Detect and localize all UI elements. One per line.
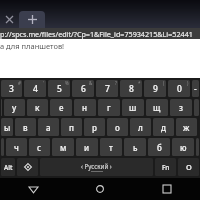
button[interactable]: о: [107, 118, 128, 136]
staticText: в: [23, 122, 28, 133]
staticText: %: [65, 80, 69, 86]
staticText: д: [161, 122, 166, 133]
button[interactable]: O: [178, 158, 199, 176]
staticText: а: [46, 122, 51, 133]
staticText: ю: [180, 142, 187, 153]
button[interactable]: ш: [122, 99, 144, 116]
staticText: г: [107, 102, 111, 113]
staticText: т: [109, 142, 113, 153]
button[interactable]: и: [76, 138, 98, 156]
button[interactable]: [196, 138, 199, 156]
button[interactable]: 8: [120, 80, 142, 97]
staticText: о: [115, 122, 120, 133]
staticText: -: [194, 83, 197, 95]
staticText: р: [92, 122, 97, 133]
button[interactable]: 6: [72, 80, 94, 97]
button[interactable]: p://spcs.me/files/edit/?Cp=1&File_id=759…: [0, 28, 200, 39]
staticText: (: [163, 80, 165, 86]
staticText: а для планшетов!: [0, 41, 65, 51]
staticText: 4: [33, 83, 38, 95]
button[interactable]: ‹ Русский ›: [40, 158, 153, 176]
button[interactable]: Home: [66, 178, 133, 200]
button[interactable]: 3: [1, 80, 22, 97]
staticText: ж: [183, 122, 190, 133]
staticText: *: [138, 80, 141, 86]
button[interactable]: Voice input: [17, 158, 38, 176]
staticText: у: [12, 102, 17, 113]
button[interactable]: в: [15, 118, 36, 136]
button[interactable]: ь: [124, 138, 146, 156]
button[interactable]: л: [130, 118, 151, 136]
button[interactable]: к: [27, 99, 48, 116]
button[interactable]: т: [100, 138, 122, 156]
button[interactable]: 5: [48, 80, 70, 97]
staticText: 3: [9, 83, 14, 95]
button[interactable]: Back: [0, 178, 66, 200]
button[interactable]: ж: [176, 118, 197, 136]
button[interactable]: у: [4, 99, 25, 116]
staticText: ь: [133, 142, 138, 153]
button[interactable]: -: [192, 80, 199, 97]
staticText: 7: [105, 83, 110, 95]
staticText: 9: [153, 83, 158, 95]
staticText: 5: [57, 83, 62, 95]
staticText: ы: [4, 122, 11, 133]
button[interactable]: ы: [1, 118, 13, 136]
staticText: м: [60, 142, 67, 153]
staticText: н: [82, 102, 88, 113]
button[interactable]: м: [52, 138, 74, 156]
button[interactable]: [194, 99, 199, 116]
staticText: ‹ Русский ›: [81, 162, 112, 170]
button[interactable]: н: [74, 99, 96, 116]
staticText: ': [43, 80, 45, 86]
button[interactable]: г: [98, 99, 120, 116]
button[interactable]: Alt: [1, 158, 15, 176]
staticText: щ: [153, 102, 161, 113]
staticText: п: [69, 122, 74, 133]
staticText: е: [59, 102, 64, 113]
staticText: з: [179, 102, 183, 113]
button[interactable]: е: [50, 99, 72, 116]
staticText: и: [84, 142, 90, 153]
button[interactable]: 9: [144, 80, 166, 97]
button[interactable]: щ: [146, 99, 168, 116]
staticText: 8: [129, 83, 134, 95]
staticText: к: [35, 102, 40, 113]
button[interactable]: 0: [168, 80, 190, 97]
button[interactable]: Recent apps: [133, 178, 200, 200]
button[interactable]: д: [153, 118, 174, 136]
button[interactable]: ю: [172, 138, 194, 156]
button[interactable]: п: [61, 118, 82, 136]
staticText: ?: [115, 80, 117, 86]
button[interactable]: Close tab: [0, 11, 19, 28]
button[interactable]: а: [38, 118, 59, 136]
button[interactable]: New tab: [19, 11, 45, 28]
staticText: &: [89, 80, 93, 86]
staticText: ): [187, 80, 189, 86]
button[interactable]: 7: [96, 80, 118, 97]
button[interactable]: з: [170, 99, 192, 116]
staticText: ч: [14, 142, 19, 153]
staticText: O: [186, 162, 192, 172]
staticText: 6: [81, 83, 86, 95]
button[interactable]: с: [29, 138, 50, 156]
staticText: ш: [129, 102, 137, 113]
staticText: Fn: [162, 163, 170, 172]
button[interactable]: Fn: [155, 158, 176, 176]
button[interactable]: б: [148, 138, 170, 156]
button[interactable]: р: [84, 118, 105, 136]
staticText: с: [37, 142, 42, 153]
button[interactable]: 4: [24, 80, 46, 97]
staticText: 0: [177, 83, 182, 95]
button[interactable]: ч: [6, 138, 27, 156]
staticText: Alt: [4, 163, 13, 172]
staticText: p://spcs.me/files/edit/?Cp=1&File_id=759…: [0, 29, 193, 39]
staticText: л: [138, 122, 143, 133]
button[interactable]: [1, 138, 4, 156]
staticText: б: [157, 142, 162, 153]
staticText: #: [18, 80, 21, 86]
